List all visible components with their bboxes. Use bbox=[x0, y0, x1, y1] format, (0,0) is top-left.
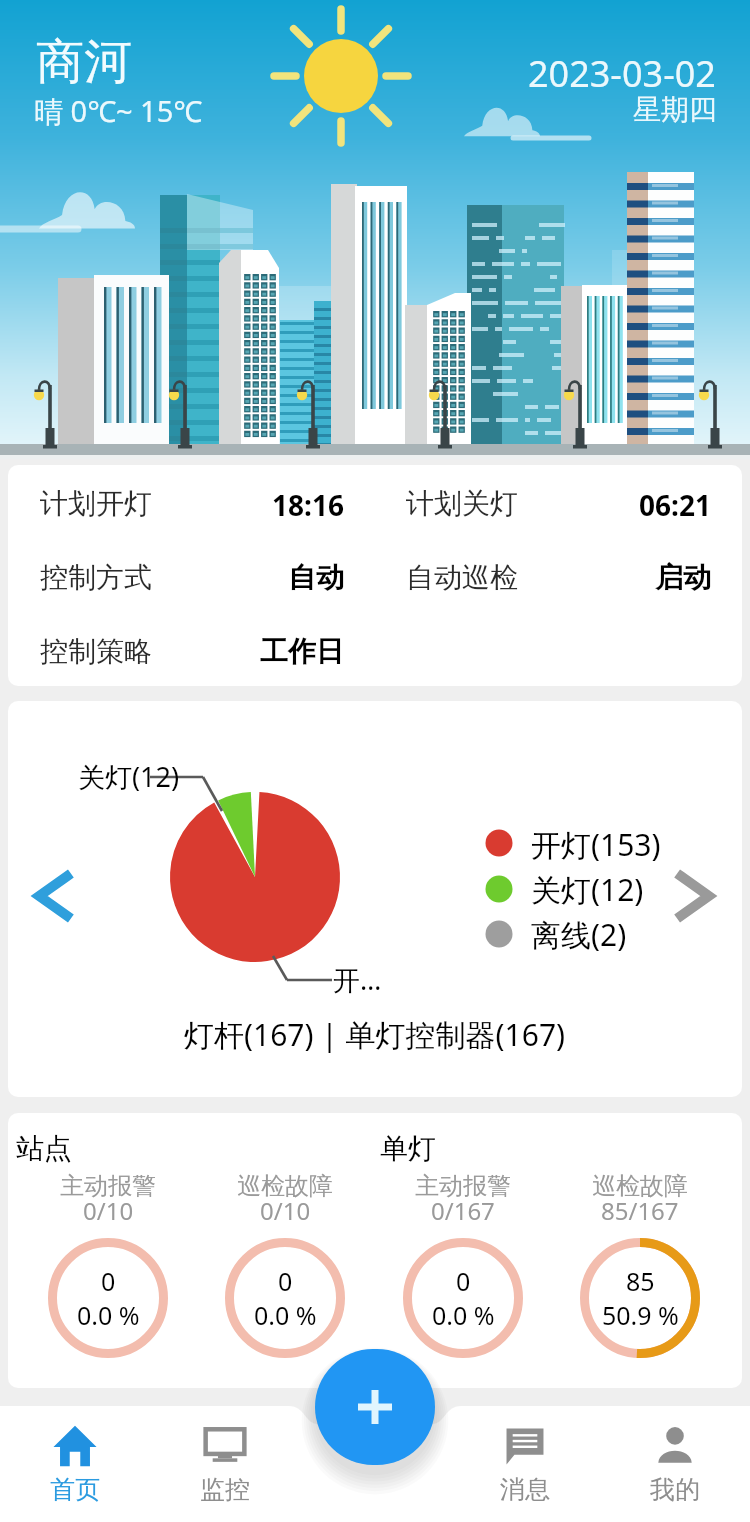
staticText: 计划关灯 bbox=[406, 486, 518, 520]
staticText: 2023-03-02 bbox=[528, 49, 716, 98]
staticText: 85 bbox=[626, 1264, 655, 1298]
staticText: 单灯 bbox=[380, 1131, 436, 1166]
staticText: 0/10 bbox=[260, 1194, 311, 1227]
staticText: 消息 bbox=[500, 1474, 550, 1505]
staticText: 站点 bbox=[16, 1131, 72, 1166]
button[interactable]: Add bbox=[315, 1349, 435, 1465]
button[interactable]: Previous bbox=[20, 861, 80, 931]
staticText: 主动报警 bbox=[415, 1171, 511, 1201]
staticText: 控制方式 bbox=[40, 560, 152, 594]
button[interactable]: 首页 bbox=[15, 1406, 135, 1522]
staticText: 监控 bbox=[200, 1474, 250, 1505]
staticText: 商河 bbox=[36, 32, 132, 92]
staticText: 首页 bbox=[50, 1474, 100, 1505]
staticText: 灯杆(167) | 单灯控制器(167) bbox=[184, 1014, 566, 1055]
staticText: 控制策略 bbox=[40, 634, 152, 668]
staticText: 自动巡检 bbox=[406, 560, 518, 594]
staticText: 工作日 bbox=[260, 634, 344, 668]
button[interactable]: 我的 bbox=[615, 1406, 735, 1522]
staticText: 50.9 % bbox=[602, 1298, 679, 1332]
staticText: 关灯(12) bbox=[78, 758, 180, 795]
staticText: 0.0 % bbox=[77, 1298, 140, 1332]
staticText: 0/167 bbox=[431, 1194, 495, 1227]
staticText: 0 bbox=[456, 1264, 471, 1298]
button[interactable]: Next bbox=[668, 861, 728, 931]
staticText: 晴 0℃~ 15℃ bbox=[34, 91, 203, 131]
staticText: 星期四 bbox=[633, 92, 717, 127]
staticText: 0 bbox=[278, 1264, 293, 1298]
staticText: 06:21 bbox=[639, 486, 711, 520]
staticText: 0.0 % bbox=[432, 1298, 495, 1332]
staticText: 0 bbox=[101, 1264, 116, 1298]
staticText: 巡检故障 bbox=[592, 1171, 688, 1201]
staticText: 开… bbox=[333, 961, 382, 998]
staticText: 主动报警 bbox=[60, 1171, 156, 1201]
staticText: 启动 bbox=[655, 560, 711, 594]
staticText: 0/10 bbox=[83, 1194, 134, 1227]
staticText: 85/167 bbox=[601, 1194, 679, 1227]
staticText: 关灯(12) bbox=[531, 869, 644, 910]
staticText: 离线(2) bbox=[531, 914, 627, 955]
staticText: 18:16 bbox=[272, 486, 344, 520]
staticText: 自动 bbox=[288, 560, 344, 594]
button[interactable]: 监控 bbox=[165, 1406, 285, 1522]
button[interactable]: 消息 bbox=[465, 1406, 585, 1522]
staticText: 开灯(153) bbox=[531, 824, 661, 865]
staticText: 我的 bbox=[650, 1474, 700, 1505]
staticText: 巡检故障 bbox=[237, 1171, 333, 1201]
staticText: 计划开灯 bbox=[40, 486, 152, 520]
staticText: 0.0 % bbox=[254, 1298, 317, 1332]
